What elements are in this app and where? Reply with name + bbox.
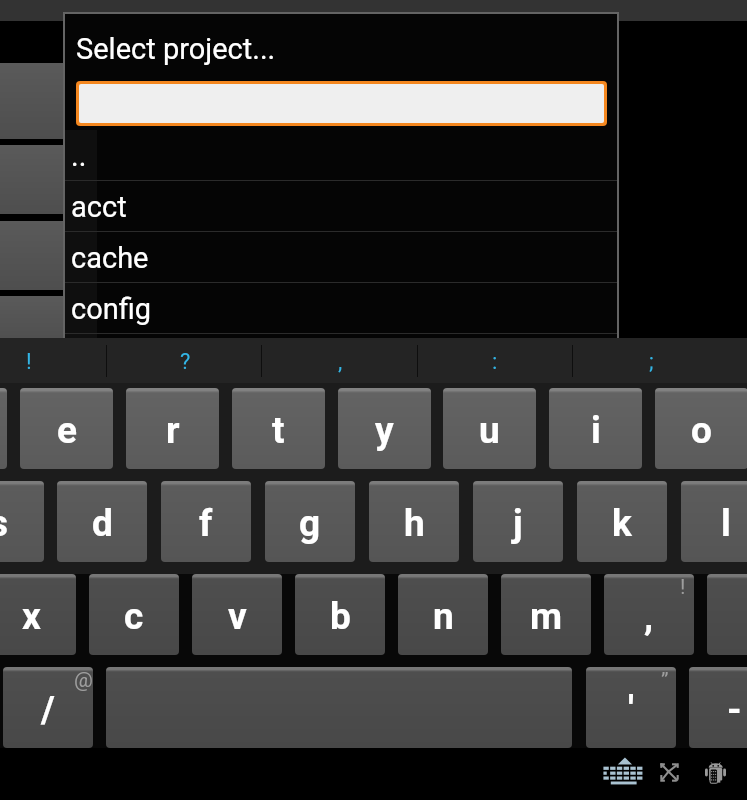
staticText: j <box>513 502 523 545</box>
button[interactable]: cache <box>65 232 617 283</box>
button[interactable]: , <box>604 574 694 655</box>
staticText: x <box>22 595 41 638</box>
button[interactable]: b <box>295 574 385 655</box>
staticText: : <box>492 349 498 375</box>
button[interactable]: , <box>262 338 416 383</box>
button[interactable]: acct <box>65 181 617 232</box>
staticText: n <box>433 595 454 638</box>
button[interactable]: d <box>57 481 147 562</box>
button[interactable]: - <box>689 667 747 748</box>
button[interactable]: e <box>20 388 113 469</box>
staticText: , <box>644 595 654 638</box>
button[interactable]: : <box>417 338 571 383</box>
staticText: ! <box>680 575 686 600</box>
staticText: - <box>727 688 742 731</box>
button[interactable]: v <box>192 574 282 655</box>
button[interactable]: c <box>89 574 179 655</box>
button[interactable]: ; <box>573 338 727 383</box>
button[interactable]: f <box>161 481 251 562</box>
button[interactable]: j <box>473 481 563 562</box>
button[interactable]: / <box>3 667 93 748</box>
button[interactable]: r <box>126 388 219 469</box>
staticText: v <box>228 595 247 638</box>
staticText: l <box>721 502 731 545</box>
button[interactable]: y <box>338 388 431 469</box>
button[interactable]: s <box>0 481 44 562</box>
button[interactable]: ' <box>586 667 676 748</box>
staticText: y <box>375 409 394 452</box>
button[interactable]: h <box>369 481 459 562</box>
staticText: ? <box>180 349 191 375</box>
staticText: b <box>330 595 351 638</box>
button[interactable]: m <box>501 574 591 655</box>
button[interactable]: n <box>398 574 488 655</box>
staticText: o <box>691 409 712 452</box>
staticText: u <box>479 409 500 452</box>
staticText: k <box>612 502 632 545</box>
staticText: r <box>166 409 180 452</box>
button[interactable]: k <box>577 481 667 562</box>
staticText: acct <box>71 190 127 224</box>
button[interactable]: ? <box>107 338 261 383</box>
staticText: e <box>57 409 77 452</box>
staticText: , <box>338 349 343 375</box>
staticText: .. <box>71 139 87 173</box>
button[interactable]: l <box>681 481 747 562</box>
button[interactable]: Fullscreen <box>645 746 693 798</box>
staticText: cache <box>71 241 149 275</box>
button[interactable]: i <box>549 388 642 469</box>
button[interactable]: .. <box>65 130 617 181</box>
button[interactable]: u <box>443 388 536 469</box>
button[interactable] <box>707 574 747 655</box>
staticText: Select project... <box>76 32 276 66</box>
button[interactable]: Switch input method <box>691 748 739 800</box>
staticText: config <box>71 292 152 326</box>
button[interactable] <box>106 667 572 748</box>
staticText: d <box>92 502 113 545</box>
staticText: h <box>404 502 425 545</box>
staticText: s <box>0 502 9 545</box>
staticText: t <box>272 409 285 452</box>
button[interactable]: o <box>655 388 747 469</box>
button[interactable]: Hide keyboard <box>599 745 647 797</box>
staticText: ” <box>661 668 669 693</box>
button[interactable]: config <box>65 283 617 334</box>
button[interactable]: ! <box>0 338 105 383</box>
staticText: i <box>591 409 601 452</box>
staticText: c <box>124 595 144 638</box>
staticText: ! <box>26 349 32 375</box>
button[interactable]: g <box>265 481 355 562</box>
staticText: ' <box>628 688 634 731</box>
button[interactable]: t <box>232 388 325 469</box>
staticText: g <box>299 502 321 545</box>
button[interactable]: x <box>0 574 76 655</box>
button[interactable] <box>0 388 7 469</box>
staticText: / <box>41 688 55 731</box>
staticText: f <box>199 502 213 545</box>
staticText: m <box>530 595 563 638</box>
staticText: ; <box>649 349 654 375</box>
staticText: @ <box>74 668 93 693</box>
